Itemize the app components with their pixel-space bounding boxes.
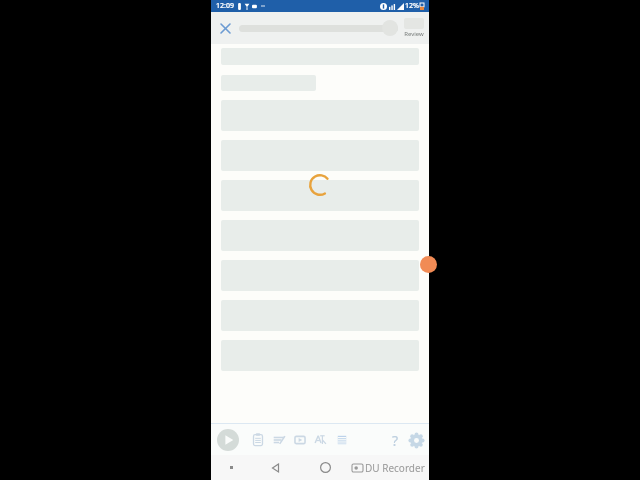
button[interactable]: Quick action [420,256,437,273]
staticText: 12% [405,1,419,11]
button[interactable]: Transcript [333,431,351,449]
button[interactable]: Notes [249,431,267,449]
staticText: ? [392,431,399,449]
button[interactable]: Translate [312,431,330,449]
button[interactable]: Settings [406,430,426,450]
button[interactable]: Play [215,427,241,453]
button[interactable]: Recents [211,455,251,480]
button[interactable]: Home [301,455,349,480]
button[interactable]: Help [386,431,404,449]
staticText: 12:09 [216,1,234,11]
button[interactable]: Close [211,12,239,44]
button[interactable]: Review [401,12,427,44]
staticText: Review [404,30,424,38]
staticText: DU Recorder [365,461,425,475]
button[interactable] [239,12,398,44]
button[interactable]: Video [291,431,309,449]
button[interactable]: Edit list [270,431,288,449]
button[interactable]: Back [251,455,301,480]
button[interactable] [221,180,419,211]
